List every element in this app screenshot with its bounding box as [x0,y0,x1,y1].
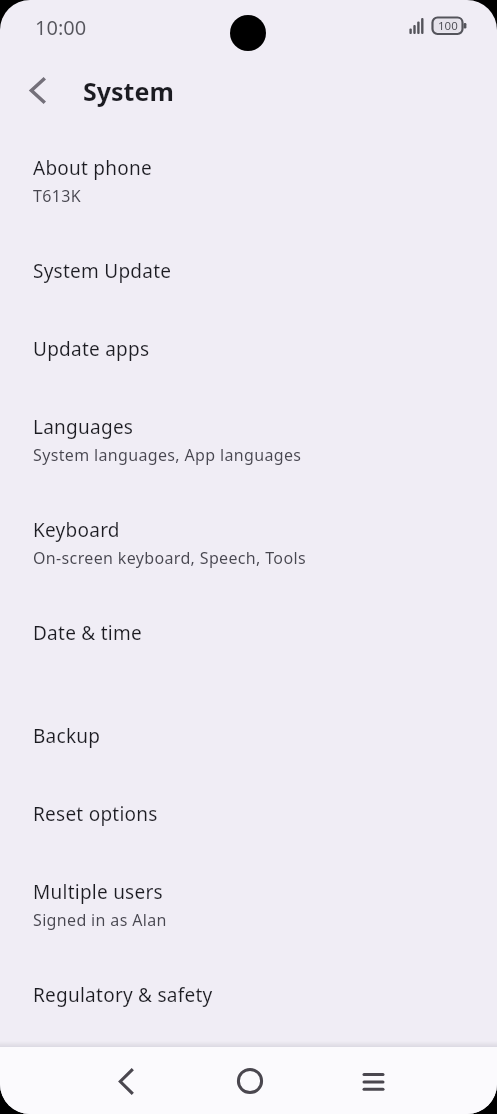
button[interactable] [349,1057,397,1105]
button[interactable] [102,1057,150,1105]
button[interactable]: Backup [0,697,497,775]
staticText: T613K [33,185,82,207]
button[interactable]: About phone [0,129,497,232]
staticText: Multiple users [33,879,163,905]
staticText: On-screen keyboard, Speech, Tools [33,547,306,569]
staticText: 10:00 [35,14,87,41]
staticText: Reset options [33,801,158,827]
button[interactable]: Multiple users [0,853,497,956]
staticText: System Update [33,258,172,284]
button[interactable] [226,1057,274,1105]
button[interactable] [16,68,60,112]
button[interactable]: Reset options [0,775,497,853]
staticText: Regulatory & safety [33,982,213,1008]
button[interactable]: Date & time [0,594,497,672]
staticText: Backup [33,723,101,749]
button[interactable]: Regulatory & safety [0,956,497,1034]
button[interactable]: Update apps [0,310,497,388]
staticText: Update apps [33,336,150,362]
button[interactable]: Languages [0,388,497,491]
staticText: System [83,74,174,108]
staticText: Date & time [33,620,142,646]
staticText: Keyboard [33,517,120,543]
staticText: System languages, App languages [33,444,302,466]
staticText: 100 [438,18,458,34]
staticText: About phone [33,155,152,181]
button[interactable]: System Update [0,232,497,310]
staticText: Languages [33,414,134,440]
button[interactable]: Keyboard [0,491,497,594]
staticText: Signed in as Alan [33,909,167,931]
